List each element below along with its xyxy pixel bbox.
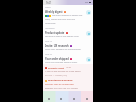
staticText: See what is new in this release cycle	[45, 35, 79, 38]
button[interactable]: Open message	[86, 31, 91, 36]
button[interactable]: Maintenance window	[43, 79, 93, 90]
staticText: MAR 10	[45, 53, 52, 56]
button[interactable]: Tab 3	[67, 91, 80, 102]
staticText: news, trends and tools from the	[45, 18, 75, 21]
button[interactable]: Tab 2	[55, 91, 67, 102]
staticText: Maintenance window	[48, 79, 73, 82]
staticText: A sign-in was blocked on a new device	[45, 70, 81, 73]
staticText: Weekly digest	[45, 10, 63, 13]
staticText: 12:30	[66, 66, 71, 69]
staticText: the latest updates in design and tech	[52, 14, 85, 17]
staticText: Track your package delivery status	[45, 61, 78, 64]
button[interactable]: YESTERDAY	[43, 27, 93, 38]
button[interactable]: MAR 10	[43, 53, 93, 64]
staticText: 3:21 PM • Account (170)	[45, 74, 67, 77]
button[interactable]: TODAY	[43, 6, 93, 25]
staticText: Security alert	[48, 66, 65, 69]
staticText: Share your feedback on the prototype	[45, 48, 81, 51]
staticText: TODAY	[45, 6, 51, 9]
button[interactable]: MAR 12	[43, 40, 93, 51]
staticText: Services may be unavailable	[45, 83, 74, 86]
button[interactable]: Open message	[86, 10, 91, 15]
staticText: community	[45, 22, 56, 25]
button[interactable]: Tab 1	[43, 91, 55, 102]
button[interactable]: Tab 4	[80, 91, 93, 102]
staticText: YESTERDAY	[45, 27, 55, 30]
staticText: Product update	[45, 31, 65, 34]
button[interactable]: Open message	[86, 57, 91, 62]
staticText: 4G	[85, 1, 88, 4]
staticText: between 2:00 and 4:00 UTC tonight	[45, 87, 78, 90]
staticText: Your order shipped	[45, 57, 69, 60]
button[interactable]: Security alert	[43, 66, 93, 77]
staticText: 9:41	[46, 1, 52, 5]
staticText: MAR 12	[45, 40, 52, 43]
staticText: Invite: UX research	[45, 44, 69, 47]
